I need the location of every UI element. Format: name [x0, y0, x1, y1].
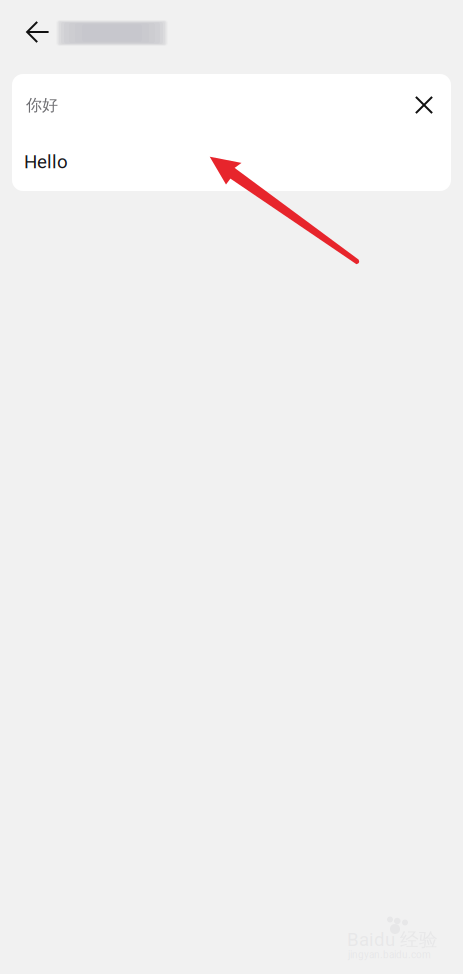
staticText: 你好 [26, 95, 58, 115]
button[interactable]: Back [16, 10, 60, 54]
button[interactable]: Close [407, 88, 441, 122]
staticText: Hello [24, 151, 68, 173]
staticText: Baidu 经验 [347, 928, 438, 951]
